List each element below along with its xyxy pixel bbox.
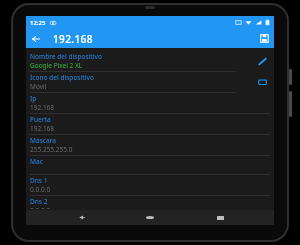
button[interactable]: Guardar <box>255 29 274 48</box>
button[interactable]: Recientes <box>205 210 235 225</box>
staticText: Puerta <box>30 115 51 124</box>
staticText: 192.168 <box>30 124 55 133</box>
staticText: Icono del dispositivo <box>30 73 94 82</box>
staticText: 0.0.0.0 <box>30 185 51 194</box>
staticText: Dns 2 <box>30 197 48 206</box>
button[interactable]: Editar nombre <box>254 53 270 69</box>
button[interactable]: Mac <box>26 156 274 174</box>
button[interactable]: Ip <box>26 93 274 113</box>
button[interactable]: Nombre del dispositivo <box>26 51 274 71</box>
staticText: Mac <box>30 157 43 166</box>
staticText: Google Pixel 2 XL <box>30 61 83 70</box>
button[interactable]: Inicio <box>135 210 165 225</box>
staticText: 255.255.255.0 <box>30 145 73 154</box>
button[interactable]: Puerta <box>26 114 274 134</box>
staticText: 192.168 <box>53 32 93 46</box>
staticText: Máscara <box>30 136 57 145</box>
button[interactable]: Dns 1 <box>26 175 274 195</box>
button[interactable]: Máscara <box>26 135 274 155</box>
staticText: 0.0.0.0 <box>30 206 51 209</box>
staticText: Ip <box>30 94 37 103</box>
staticText: Móvil <box>30 82 47 91</box>
staticText: Nombre del dispositivo <box>30 52 102 61</box>
button[interactable]: Atrás <box>26 29 45 48</box>
button[interactable]: Atrás <box>66 210 96 225</box>
button[interactable]: Icono del dispositivo <box>26 72 274 92</box>
staticText: Dns 1 <box>30 176 48 185</box>
button[interactable]: Dns 2 <box>26 196 274 210</box>
button[interactable]: Elegir icono <box>254 74 270 90</box>
staticText: 192.168 <box>30 103 55 112</box>
staticText: 12:25 <box>30 19 46 27</box>
